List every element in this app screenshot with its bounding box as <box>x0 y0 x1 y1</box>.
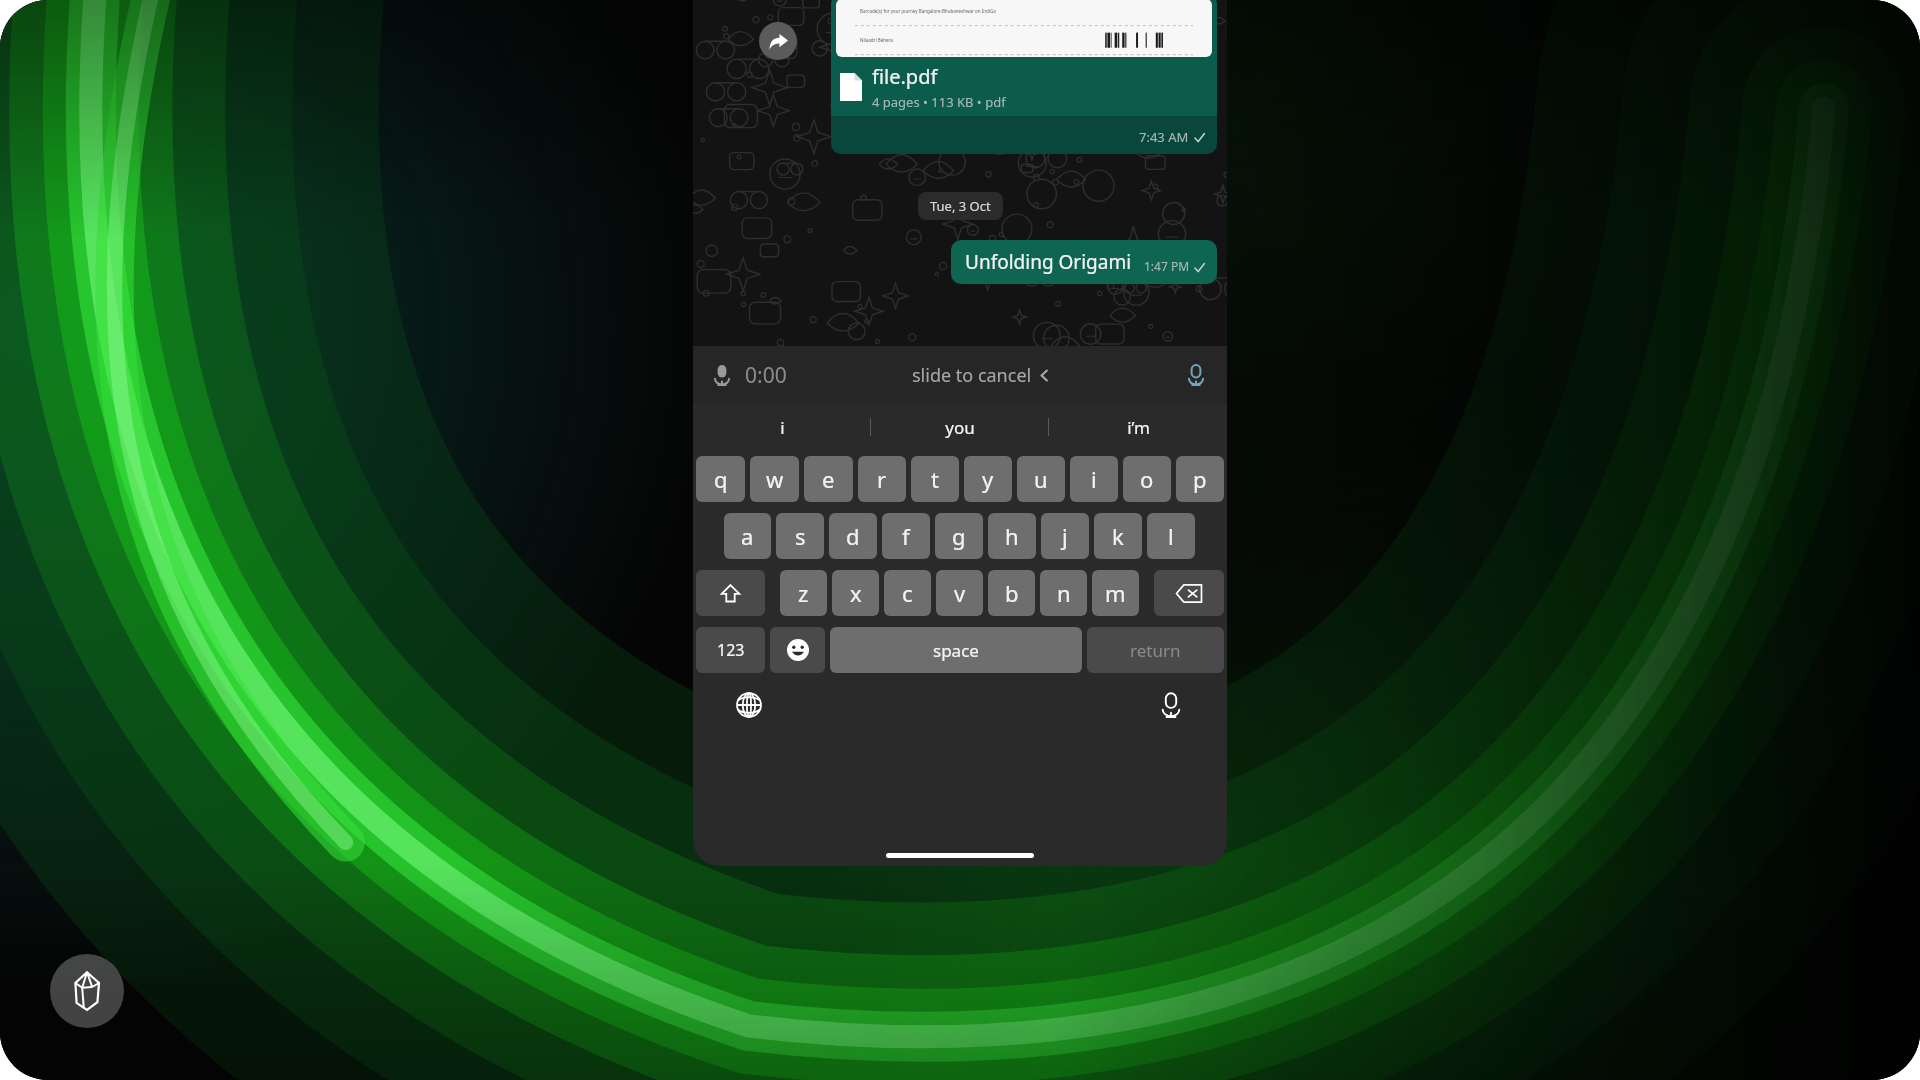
staticText: l <box>1168 521 1174 551</box>
staticText: u <box>1034 464 1048 494</box>
button[interactable]: b <box>988 570 1035 616</box>
button[interactable]: h <box>988 513 1036 559</box>
button[interactable]: i <box>1070 456 1118 502</box>
staticText: x <box>850 578 862 608</box>
staticText: i <box>1091 464 1097 494</box>
button[interactable]: k <box>1094 513 1142 559</box>
button[interactable]: Change keyboard language <box>729 685 769 725</box>
button[interactable]: o <box>1123 456 1171 502</box>
button[interactable]: i’m <box>1049 404 1227 450</box>
button[interactable]: d <box>829 513 877 559</box>
staticText: e <box>822 464 835 494</box>
button[interactable]: j <box>1041 513 1089 559</box>
button[interactable]: a <box>724 513 771 559</box>
button[interactable]: l <box>1147 513 1195 559</box>
staticText: t <box>931 464 939 494</box>
staticText: z <box>798 578 809 608</box>
staticText: slide to cancel <box>912 363 1032 388</box>
button[interactable]: n <box>1040 570 1087 616</box>
staticText: return <box>1130 639 1181 662</box>
button[interactable]: Forward <box>759 22 797 60</box>
staticText: c <box>902 578 913 608</box>
staticText: 7:43 AM <box>1139 128 1189 146</box>
staticText: i’m <box>1127 416 1150 439</box>
button[interactable]: you <box>871 404 1049 450</box>
button[interactable]: m <box>1092 570 1139 616</box>
button[interactable]: r <box>858 456 906 502</box>
staticText: w <box>766 464 784 494</box>
staticText: a <box>741 521 754 551</box>
button[interactable]: g <box>935 513 983 559</box>
staticText: h <box>1005 521 1019 551</box>
button[interactable]: c <box>884 570 931 616</box>
button[interactable]: f <box>882 513 930 559</box>
staticText: Barcode(s) for your journey Bangalore-Bh… <box>860 8 996 14</box>
staticText: s <box>795 521 806 551</box>
staticText: q <box>714 464 728 494</box>
other: Recording <box>707 360 737 390</box>
staticText: you <box>945 416 975 439</box>
staticText: Tue, 3 Oct <box>930 197 991 215</box>
staticText: 0:00 <box>745 361 787 390</box>
button[interactable]: y <box>964 456 1012 502</box>
button[interactable]: s <box>776 513 824 559</box>
button[interactable]: x <box>832 570 879 616</box>
staticText: v <box>954 578 966 608</box>
staticText: f <box>902 521 910 551</box>
button[interactable]: v <box>936 570 983 616</box>
button[interactable]: i <box>693 404 871 450</box>
staticText: 123 <box>717 639 745 661</box>
button[interactable]: return <box>1087 627 1224 673</box>
staticText: o <box>1140 464 1154 494</box>
staticText: b <box>1005 578 1019 608</box>
staticText: k <box>1112 521 1124 551</box>
staticText: m <box>1105 578 1126 608</box>
staticText: n <box>1057 578 1071 608</box>
button[interactable]: Dictation <box>1151 685 1191 725</box>
button[interactable]: z <box>780 570 827 616</box>
button[interactable]: 123 <box>696 627 765 673</box>
button[interactable]: Crystal logo <box>50 954 124 1028</box>
button[interactable]: Recording <box>693 346 1227 404</box>
staticText: file.pdf <box>872 63 938 90</box>
staticText: r <box>877 464 887 494</box>
button[interactable]: q <box>696 456 745 502</box>
button[interactable]: Barcode(s) for your journey Bangalore-Bh… <box>831 0 1217 124</box>
button[interactable]: e <box>804 456 853 502</box>
button[interactable]: p <box>1176 456 1224 502</box>
button[interactable]: w <box>750 456 799 502</box>
staticText: d <box>846 521 860 551</box>
button[interactable]: Unfolding Origami <box>951 240 1217 284</box>
button[interactable]: Emoji <box>770 627 825 673</box>
staticText: 1:47 PM <box>1144 258 1190 274</box>
staticText: i <box>780 416 785 439</box>
staticText: space <box>933 639 979 662</box>
staticText: y <box>982 464 994 494</box>
button[interactable]: Backspace <box>1154 570 1224 616</box>
staticText: 4 pages • 113 KB • pdf <box>872 93 1006 111</box>
staticText: Unfolding Origami <box>965 249 1132 275</box>
button[interactable]: Shift <box>696 570 765 616</box>
staticText: Nilaadri Behera <box>860 37 893 43</box>
staticText: p <box>1193 464 1207 494</box>
staticText: g <box>952 521 966 551</box>
button[interactable]: space <box>830 627 1082 673</box>
button[interactable]: Send voice message <box>1177 356 1215 394</box>
button[interactable]: u <box>1017 456 1065 502</box>
button[interactable]: t <box>911 456 959 502</box>
staticText: j <box>1062 521 1068 551</box>
